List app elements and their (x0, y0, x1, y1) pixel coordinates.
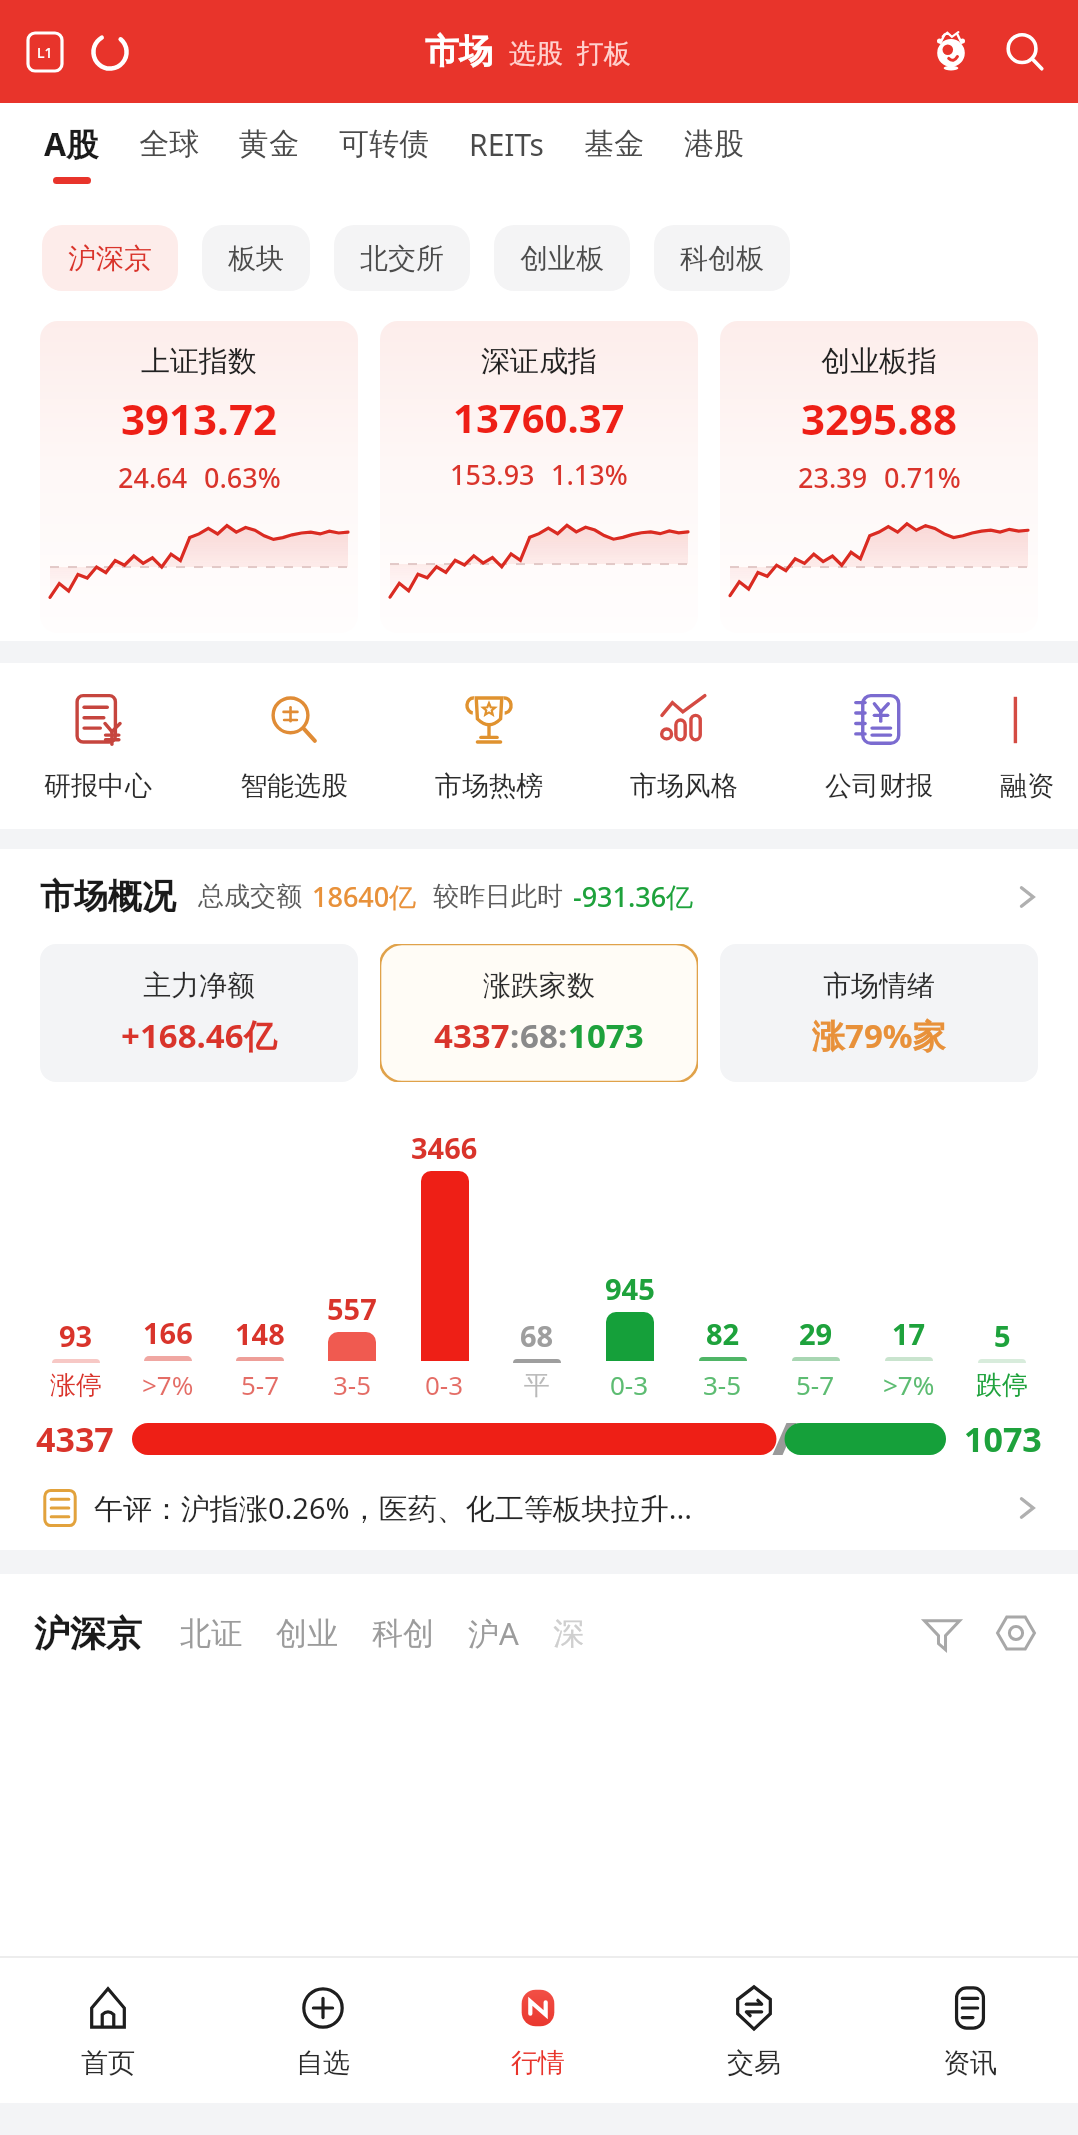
button[interactable]: 港股 (670, 125, 758, 181)
button[interactable]: 创业板指 (720, 321, 1038, 633)
button[interactable]: 深证成指 (380, 321, 698, 633)
button[interactable]: 沪A (468, 1612, 519, 1654)
staticText: 智能选股 (240, 769, 348, 803)
button[interactable]: 首页 (0, 1958, 215, 2103)
staticText: 0.71% (884, 459, 961, 496)
staticText: -931.36亿 (573, 878, 694, 915)
staticText: 0-3 (425, 1367, 464, 1402)
staticText: 4337 (434, 1013, 510, 1058)
button[interactable]: 研报中心 (0, 689, 196, 803)
staticText: 82 (706, 1314, 740, 1353)
button[interactable]: 全球 (125, 125, 213, 181)
staticText: 24.64 (118, 459, 188, 496)
staticText: 科创板 (680, 241, 764, 276)
staticText: 涨停 (50, 1369, 102, 1402)
button[interactable]: 融资 (976, 689, 1078, 803)
button[interactable]: Assistant (924, 25, 978, 79)
staticText: 166 (143, 1313, 193, 1352)
button[interactable]: 市场概况 (0, 875, 1078, 918)
button[interactable]: Search (1000, 27, 1050, 77)
button[interactable]: 科创 (372, 1614, 434, 1653)
staticText: 资讯 (943, 2046, 997, 2080)
button[interactable]: 资讯 (862, 1958, 1078, 2103)
staticText: 全球 (139, 125, 199, 163)
staticText: REITs (469, 124, 544, 165)
button[interactable]: Night mode (88, 30, 132, 74)
button[interactable]: 科创板 (654, 225, 790, 291)
staticText: 科创 (372, 1614, 434, 1653)
staticText: 3466 (411, 1128, 478, 1167)
staticText: 18640亿 (312, 878, 417, 915)
button[interactable]: 82 (676, 1111, 769, 1402)
staticText: 黄金 (239, 125, 299, 163)
staticText: 3-5 (703, 1367, 742, 1402)
button[interactable]: 17 (862, 1111, 955, 1402)
button[interactable]: 93 (30, 1113, 122, 1402)
button[interactable]: 市场 (425, 30, 493, 73)
button[interactable]: 可转债 (325, 125, 443, 181)
staticText: : (510, 1013, 520, 1058)
staticText: 3295.88 (801, 390, 957, 447)
staticText: 交易 (727, 2046, 781, 2080)
button[interactable]: 557 (306, 1111, 398, 1402)
button[interactable]: 945 (583, 1111, 676, 1402)
staticText: 涨79%家 (812, 1013, 946, 1058)
staticText: 17 (892, 1314, 926, 1353)
staticText: 沪A (468, 1612, 519, 1654)
button[interactable]: 创业 (276, 1614, 338, 1653)
button[interactable]: A股 (30, 122, 113, 184)
button[interactable]: Level 1 quotes (28, 33, 62, 71)
staticText: 148 (235, 1314, 285, 1353)
button[interactable]: 沪深京 (34, 1611, 142, 1656)
button[interactable]: 148 (214, 1111, 306, 1402)
staticText: 4337 (36, 1416, 114, 1462)
button[interactable]: 基金 (570, 125, 658, 181)
staticText: 29 (799, 1314, 833, 1353)
button[interactable]: 午评：沪指涨0.26%，医药、化工等板块拉升... (0, 1488, 1078, 1528)
staticText: 较昨日此时 (433, 880, 563, 913)
button[interactable]: 北证 (180, 1614, 242, 1653)
staticText: >7% (142, 1367, 194, 1402)
button[interactable]: 智能选股 (196, 689, 391, 803)
staticText: 行情 (511, 2046, 565, 2080)
staticText: 3-5 (333, 1367, 372, 1402)
staticText: A股 (44, 122, 99, 166)
button[interactable]: 选股 (509, 37, 563, 73)
button[interactable]: 北交所 (334, 225, 470, 291)
button[interactable]: 沪深京 (42, 225, 178, 291)
button[interactable]: 黄金 (225, 125, 313, 181)
button[interactable]: 市场风格 (586, 689, 781, 803)
button[interactable]: Settings (988, 1605, 1044, 1661)
button[interactable]: 5 (955, 1113, 1048, 1402)
button[interactable]: 创业板 (494, 225, 630, 291)
staticText: 1073 (964, 1416, 1042, 1462)
button[interactable]: 市场情绪 (720, 944, 1038, 1082)
button[interactable]: 上证指数 (40, 321, 358, 633)
button[interactable]: 交易 (646, 1958, 862, 2103)
staticText: 5 (994, 1316, 1011, 1355)
button[interactable]: 行情 (430, 1958, 646, 2103)
button[interactable]: REITs (455, 124, 558, 183)
staticText: 平 (524, 1369, 550, 1402)
button[interactable]: 主力净额 (40, 944, 358, 1082)
staticText: 市场风格 (630, 769, 738, 803)
button[interactable]: 深 (553, 1614, 584, 1653)
button[interactable]: 涨跌家数 (380, 944, 698, 1082)
button[interactable]: 166 (122, 1111, 214, 1402)
staticText: 港股 (684, 125, 744, 163)
staticText: 23.39 (798, 459, 868, 496)
button[interactable]: 68 (490, 1113, 583, 1402)
button[interactable]: Filter (914, 1605, 970, 1661)
staticText: 公司财报 (825, 769, 933, 803)
staticText: 北交所 (360, 241, 444, 276)
button[interactable]: 打板 (577, 37, 631, 73)
staticText: L1 (37, 43, 53, 62)
button[interactable]: 板块 (202, 225, 310, 291)
staticText: 板块 (228, 241, 284, 276)
button[interactable]: 公司财报 (781, 689, 976, 803)
button[interactable]: 3466 (398, 1111, 490, 1402)
button[interactable]: 自选 (215, 1958, 430, 2103)
button[interactable]: 29 (769, 1111, 862, 1402)
button[interactable]: 市场热榜 (391, 689, 586, 803)
staticText: 创业 (276, 1614, 338, 1653)
